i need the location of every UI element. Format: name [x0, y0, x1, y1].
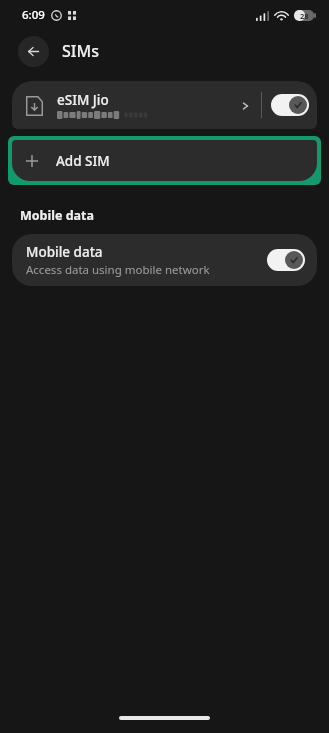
staticText: Mobile data [26, 243, 103, 261]
button[interactable]: Back [18, 36, 49, 67]
button[interactable]: eSIM Jio [12, 91, 261, 120]
staticText: 6:09 [22, 7, 45, 23]
staticText: Mobile data [20, 207, 94, 224]
button[interactable]: Toggle eSIM Jio [262, 94, 317, 116]
button[interactable]: Mobile data [12, 234, 317, 286]
staticText: Access data using mobile network [26, 262, 210, 278]
staticText: eSIM Jio [57, 91, 109, 109]
staticText: 28 [300, 11, 309, 21]
button[interactable]: Add SIM [12, 140, 317, 181]
staticText: SIMs [62, 40, 99, 62]
staticText: Add SIM [56, 152, 110, 170]
